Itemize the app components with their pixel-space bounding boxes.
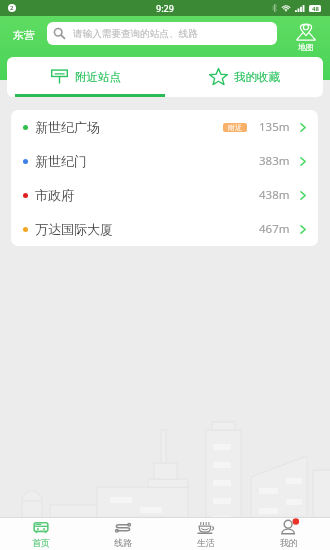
- button[interactable]: 万达国际大厦: [11, 212, 318, 246]
- staticText: 首页: [32, 537, 50, 548]
- button[interactable]: 市政府: [11, 178, 318, 212]
- staticText: 9:29: [156, 2, 174, 14]
- button[interactable]: 生活: [164, 518, 247, 550]
- button[interactable]: 新世纪广场: [11, 110, 318, 144]
- staticText: 新世纪门: [35, 153, 87, 169]
- button[interactable]: 新世纪门: [11, 144, 318, 178]
- button[interactable]: 请输入需要查询的站点、线路: [47, 22, 277, 45]
- button[interactable]: 附近站点: [7, 57, 165, 97]
- staticText: 附近站点: [75, 70, 121, 84]
- button[interactable]: 我的: [247, 518, 330, 550]
- button[interactable]: 东营: [5, 24, 43, 46]
- staticText: 新世纪广场: [35, 119, 100, 135]
- staticText: 48: [312, 5, 319, 12]
- staticText: 生活: [197, 537, 215, 548]
- staticText: 万达国际大厦: [35, 221, 113, 237]
- staticText: 135m: [259, 119, 290, 135]
- button[interactable]: 首页: [0, 518, 82, 550]
- button[interactable]: 线路: [82, 518, 164, 550]
- staticText: 我的: [280, 537, 298, 548]
- staticText: 附近: [228, 123, 242, 132]
- staticText: 请输入需要查询的站点、线路: [73, 28, 198, 40]
- staticText: 438m: [259, 187, 290, 203]
- staticText: 市政府: [35, 187, 74, 203]
- staticText: 线路: [114, 537, 132, 548]
- staticText: 地图: [298, 42, 314, 52]
- staticText: 383m: [259, 153, 290, 169]
- staticText: 东营: [13, 28, 35, 42]
- button[interactable]: 我的收藏: [165, 57, 323, 97]
- button[interactable]: 地图: [287, 22, 325, 52]
- staticText: 我的收藏: [234, 70, 280, 84]
- staticText: 467m: [259, 221, 290, 237]
- staticText: 2: [10, 4, 14, 12]
